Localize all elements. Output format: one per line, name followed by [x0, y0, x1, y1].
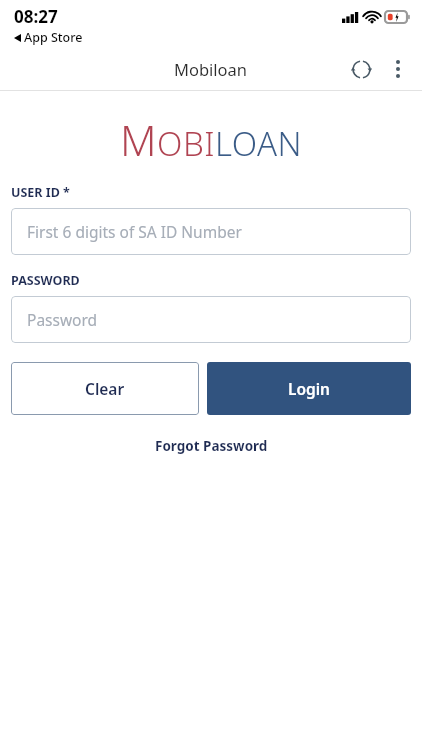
- staticText: 08:27: [14, 5, 58, 28]
- staticText: PASSWORD: [11, 272, 80, 289]
- button[interactable]: First 6 digits of SA ID Number: [11, 208, 411, 255]
- staticText: MOBILOAN: [120, 111, 303, 168]
- staticText: Password: [27, 309, 98, 330]
- staticText: Login: [288, 378, 331, 399]
- staticText: Mobiloan: [174, 58, 248, 80]
- button[interactable]: Refresh: [342, 50, 380, 88]
- staticText: App Store: [24, 29, 83, 46]
- staticText: Forgot Password: [155, 437, 268, 455]
- button[interactable]: Clear: [11, 362, 199, 415]
- button[interactable]: Forgot Password: [11, 437, 411, 455]
- button[interactable]: More options: [380, 51, 416, 87]
- staticText: First 6 digits of SA ID Number: [27, 221, 242, 242]
- button[interactable]: Login: [207, 362, 411, 415]
- staticText: USER ID *: [11, 184, 70, 201]
- staticText: Clear: [85, 378, 125, 399]
- button[interactable]: Password: [11, 296, 411, 343]
